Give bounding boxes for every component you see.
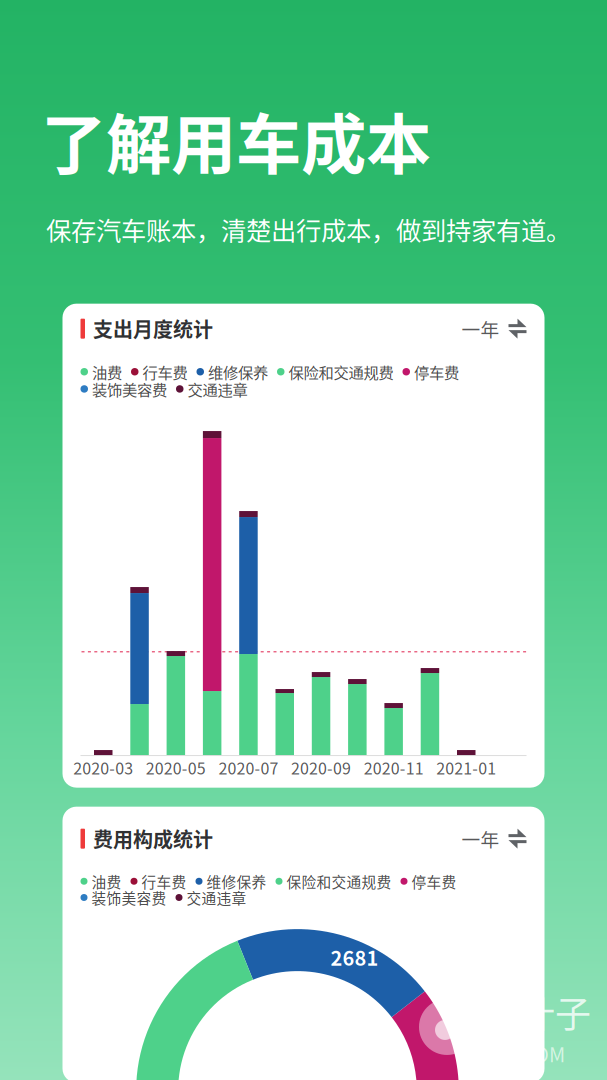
staticText: 了解用车成本 [41, 92, 431, 187]
staticText: 7YZ.COM [483, 1039, 565, 1068]
staticText: 保存汽车账本，清楚出行成本，做到持家有道。 [46, 211, 571, 248]
staticText: 一年 [461, 825, 499, 852]
staticText: 2020-05 [146, 756, 206, 779]
staticText: 保险和交通规费 [288, 361, 393, 383]
staticText: 装饰美容费 [92, 378, 167, 400]
staticText: 行车费 [142, 361, 187, 383]
button[interactable]: 一年 [461, 825, 526, 852]
staticText: 2020-07 [218, 756, 278, 779]
staticText: 2021-01 [436, 756, 496, 779]
staticText: 2681 [330, 943, 378, 972]
staticText: 维修保养 [206, 871, 266, 892]
staticText: 维修保养 [208, 361, 268, 383]
staticText: 交通违章 [186, 887, 246, 908]
staticText: 停车费 [414, 361, 459, 383]
button[interactable]: 一年 [461, 315, 526, 342]
staticText: 2020-11 [364, 756, 424, 779]
staticText: 七叶子 [483, 986, 591, 1038]
staticText: 一年 [461, 315, 499, 342]
staticText: 支出月度统计 [93, 314, 213, 343]
staticText: 2020-09 [291, 756, 351, 779]
staticText: 油费 [91, 871, 121, 892]
staticText: 行车费 [141, 871, 186, 892]
staticText: 保险和交通规费 [286, 871, 391, 892]
staticText: 油费 [92, 361, 122, 383]
staticText: 装饰美容费 [91, 887, 166, 908]
staticText: 停车费 [411, 871, 456, 892]
staticText: 2020-03 [73, 756, 133, 779]
staticText: 费用构成统计 [93, 824, 213, 853]
staticText: 交通违章 [187, 378, 247, 400]
